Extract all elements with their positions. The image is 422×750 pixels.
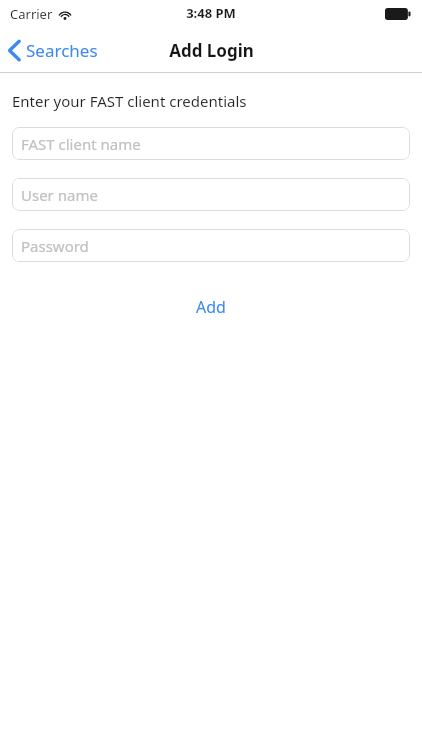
button[interactable]: FAST client name: [12, 127, 410, 160]
staticText: Password: [21, 236, 89, 256]
staticText: Add: [196, 296, 226, 318]
button[interactable]: Add: [12, 296, 410, 318]
staticText: Add Login: [169, 39, 254, 62]
staticText: Carrier: [10, 5, 53, 23]
staticText: FAST client name: [21, 134, 141, 154]
button[interactable]: User name: [12, 178, 410, 211]
button[interactable]: Password: [12, 229, 410, 262]
staticText: Searches: [26, 39, 98, 62]
staticText: Enter your FAST client credentials: [12, 91, 247, 111]
staticText: User name: [21, 185, 98, 205]
button[interactable]: Searches: [0, 35, 108, 66]
staticText: 3:48 PM: [186, 4, 236, 22]
